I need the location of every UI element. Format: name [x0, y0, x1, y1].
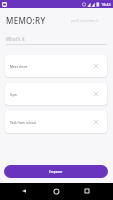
staticText: Gym: [10, 92, 18, 96]
button[interactable]: Empezar: [4, 165, 108, 178]
button[interactable]: Remove Task from school: [90, 116, 102, 128]
button[interactable]: Gym: [5, 83, 107, 105]
button[interactable]: Task from school: [5, 111, 107, 133]
staticText: Task from school: [10, 120, 37, 124]
staticText: Meet client: [10, 64, 28, 68]
button[interactable]: Remove Meet client: [90, 60, 102, 72]
button[interactable]: Recents: [79, 183, 95, 199]
staticText: MEMO:RY: [6, 15, 46, 26]
button[interactable]: Remove Gym: [90, 88, 102, 100]
staticText: you'll remember it: [71, 19, 99, 23]
button[interactable]: Home: [48, 183, 64, 199]
staticText: Empezar: [49, 170, 63, 174]
staticText: What's it: [6, 36, 25, 42]
button[interactable]: Back: [16, 183, 32, 199]
button[interactable]: Meet client: [5, 55, 107, 77]
staticText: 18:45: [101, 2, 111, 7]
